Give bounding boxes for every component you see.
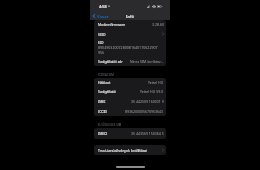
staticText: Hálózat — [98, 80, 111, 85]
button[interactable]: Vissza — [92, 12, 109, 20]
other: Mobilhálózat — [147, 5, 150, 8]
staticText: 3.28.60 — [152, 22, 164, 27]
staticText: 89049032007280081640170622907 — [98, 45, 158, 50]
button[interactable]: IMEI — [94, 96, 166, 106]
staticText: Modemfirmware — [98, 22, 126, 27]
staticText: 35 443569 150364 5 — [131, 131, 164, 136]
button[interactable]: IMEI2 — [94, 128, 166, 139]
button[interactable]: Szolgáltató — [94, 87, 166, 96]
staticText: Szolgáltató — [98, 89, 116, 94]
other: Wi-Fi — [153, 5, 155, 8]
button[interactable]: Modemfirmware — [94, 20, 166, 29]
staticText: Infó — [90, 14, 170, 19]
button[interactable]: ICCID — [94, 106, 166, 116]
staticText: EID — [98, 40, 104, 45]
staticText: Szolgáltatói zár — [98, 59, 123, 64]
staticText: Yettel HU 59.0 — [140, 89, 164, 94]
staticText: 8936200005670953643 — [125, 109, 164, 114]
staticText: ICCID — [98, 109, 108, 114]
staticText: 4:58 — [99, 4, 107, 9]
staticText: Vissza — [97, 14, 109, 19]
staticText: 956 — [98, 50, 105, 55]
staticText: SEID — [98, 32, 106, 37]
staticText: 35 442509 160031 9 — [131, 99, 164, 104]
button[interactable]: EID — [94, 39, 166, 56]
button[interactable]: Trust-tanúsítványok beállításai — [94, 145, 166, 155]
button[interactable]: SEID — [94, 29, 166, 39]
other: Akkumulátor — [157, 5, 162, 8]
staticText: IMEI2 — [98, 131, 108, 136]
other: Vissza — [92, 12, 96, 20]
staticText: ELSŐDLEGES SIM — [98, 123, 122, 127]
other: Helymeghatározás — [108, 5, 110, 7]
staticText: FIZIKAI SIM — [98, 73, 114, 77]
staticText: Yettel HU — [148, 80, 164, 85]
button[interactable]: Szolgáltatói zár — [94, 56, 166, 66]
staticText: IMEI — [98, 99, 106, 104]
staticText: Trust-tanúsítványok beállításai — [98, 148, 148, 153]
staticText: Nincs SIM-korlátoz… — [130, 59, 164, 64]
button[interactable]: Hálózat — [94, 78, 166, 87]
